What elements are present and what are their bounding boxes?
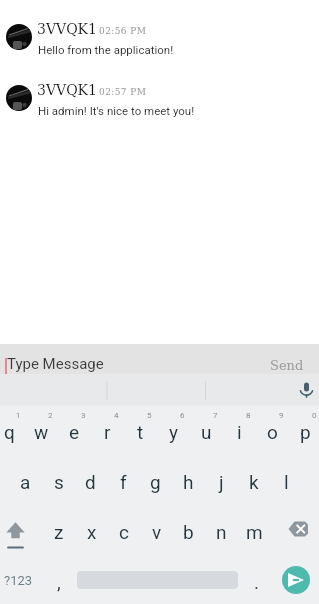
staticText: d — [85, 471, 96, 493]
button[interactable]: 3VVQK1 — [0, 84, 319, 118]
button[interactable]: h — [172, 455, 205, 504]
staticText: Type Message — [7, 355, 104, 373]
button[interactable]: s — [42, 455, 75, 504]
button[interactable]: v — [140, 504, 173, 553]
staticText: 3 — [81, 411, 86, 420]
button[interactable]: ?123 — [0, 553, 44, 604]
staticText: c — [119, 521, 129, 543]
button[interactable]: 2 — [25, 406, 58, 455]
staticText: 4 — [114, 411, 119, 420]
button[interactable]: Type Message — [0, 344, 319, 374]
staticText: r — [104, 421, 111, 443]
staticText: 02:57 PM — [99, 87, 147, 97]
button[interactable]: . — [243, 553, 267, 604]
staticText: 8 — [246, 411, 251, 420]
button[interactable]: z — [42, 504, 75, 553]
staticText: e — [69, 421, 80, 443]
button[interactable]: 0 — [289, 406, 319, 455]
staticText: k — [249, 471, 259, 493]
staticText: y — [169, 421, 178, 443]
staticText: h — [183, 471, 194, 493]
staticText: v — [152, 521, 162, 543]
staticText: f — [120, 471, 127, 493]
staticText: w — [34, 421, 49, 443]
staticText: s — [54, 471, 64, 493]
button[interactable]: j — [205, 455, 238, 504]
staticText: 3VVQK1 — [37, 21, 97, 37]
staticText: a — [20, 471, 31, 493]
button[interactable]: n — [205, 504, 238, 553]
button[interactable]: 9 — [256, 406, 289, 455]
button[interactable]: Send message — [282, 566, 310, 594]
button[interactable]: Shift — [0, 504, 36, 553]
staticText: Send — [270, 358, 304, 373]
button[interactable]: a — [9, 455, 42, 504]
staticText: x — [87, 521, 97, 543]
button[interactable]: l — [270, 455, 303, 504]
button[interactable]: g — [139, 455, 172, 504]
staticText: q — [4, 421, 15, 443]
button[interactable]: c — [107, 504, 140, 553]
button[interactable]: b — [172, 504, 205, 553]
button[interactable]: 8 — [223, 406, 256, 455]
button[interactable]: k — [237, 455, 270, 504]
staticText: , — [57, 571, 61, 593]
staticText: Hello from the application! — [38, 43, 174, 56]
button[interactable]: 4 — [91, 406, 124, 455]
button[interactable]: x — [75, 504, 108, 553]
button[interactable]: 3 — [58, 406, 91, 455]
staticText: l — [284, 471, 289, 493]
staticText: 7 — [213, 411, 218, 420]
staticText: ?123 — [4, 573, 33, 588]
button[interactable]: 6 — [157, 406, 190, 455]
staticText: 2 — [48, 411, 53, 420]
staticText: g — [150, 471, 161, 493]
staticText: Hi admin! It's nice to meet you! — [38, 104, 195, 117]
staticText: m — [246, 521, 263, 543]
staticText: j — [219, 471, 224, 493]
button[interactable]: d — [74, 455, 107, 504]
staticText: 02:56 PM — [99, 26, 147, 36]
staticText: u — [201, 421, 212, 443]
staticText: p — [300, 421, 311, 443]
button[interactable]: Backspace — [283, 504, 319, 553]
staticText: t — [137, 421, 144, 443]
staticText: 5 — [147, 411, 152, 420]
staticText: i — [237, 421, 242, 443]
staticText: 1 — [16, 411, 21, 420]
staticText: 0 — [312, 411, 317, 420]
staticText: 9 — [279, 411, 284, 420]
staticText: b — [183, 521, 194, 543]
staticText: n — [216, 521, 227, 543]
staticText: 6 — [180, 411, 185, 420]
button[interactable]: 5 — [124, 406, 157, 455]
staticText: . — [254, 571, 260, 593]
button[interactable]: 7 — [190, 406, 223, 455]
button[interactable]: 3VVQK1 — [0, 23, 319, 57]
button[interactable]: Voice input — [294, 380, 318, 400]
button[interactable]: f — [107, 455, 140, 504]
staticText: 3VVQK1 — [37, 82, 97, 98]
button[interactable]: m — [238, 504, 271, 553]
staticText: z — [54, 521, 64, 543]
staticText: o — [267, 421, 278, 443]
button[interactable]: Send — [270, 358, 304, 373]
button[interactable]: 1 — [0, 406, 26, 455]
button[interactable]: , — [48, 553, 70, 604]
